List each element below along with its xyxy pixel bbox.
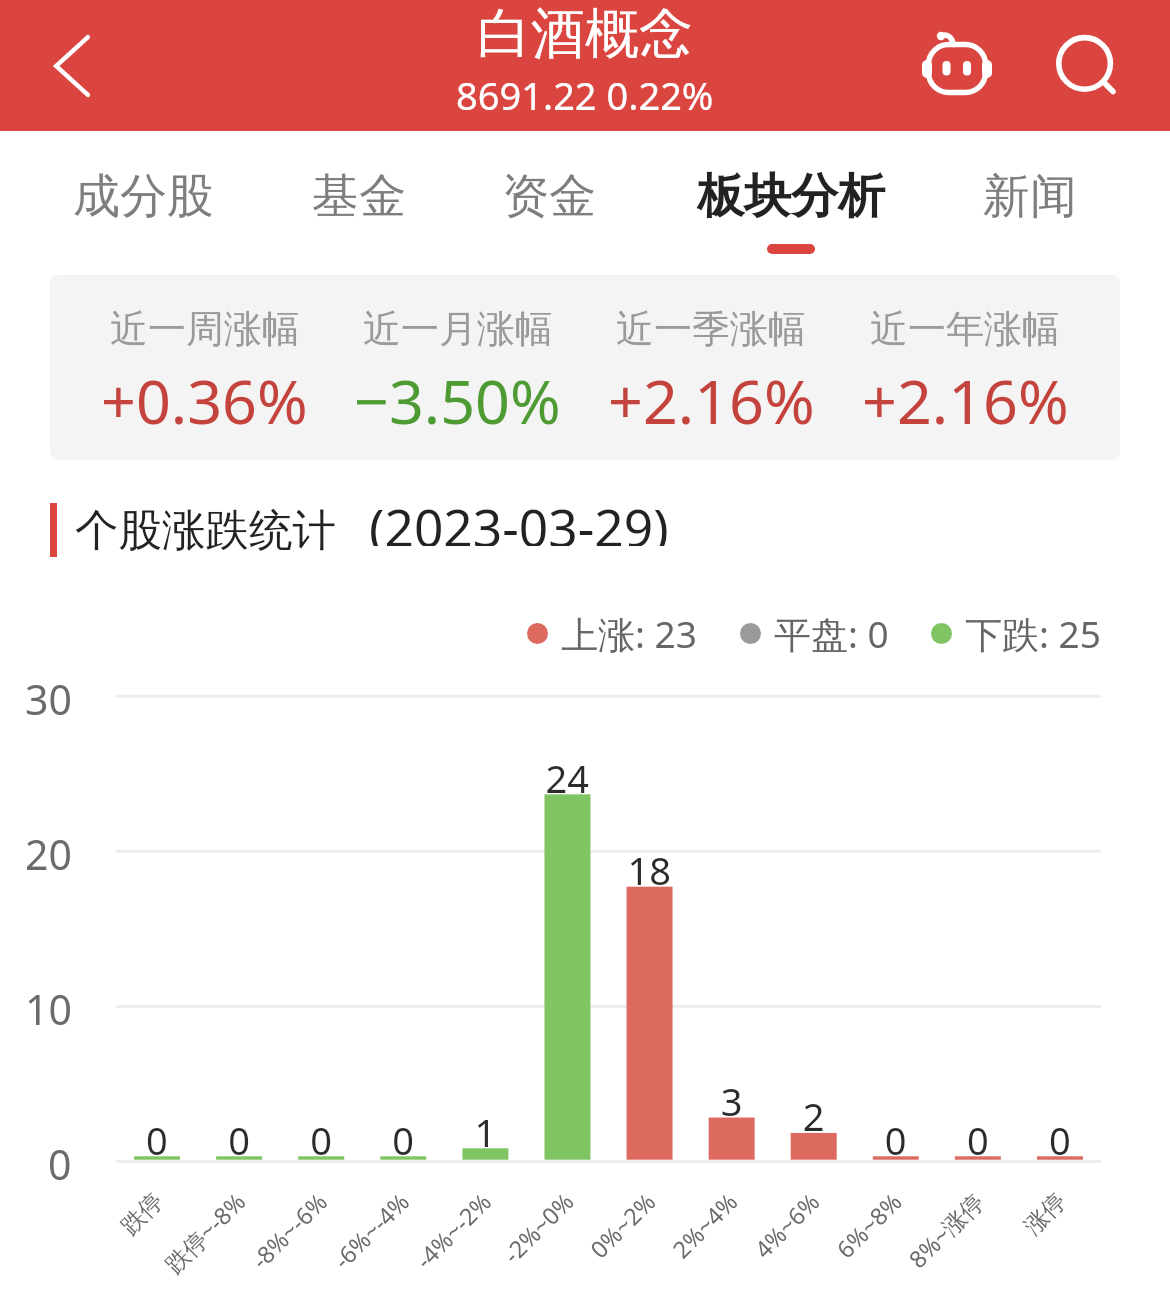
button[interactable]: Back (12, 10, 132, 121)
staticText: +2.16% (608, 359, 815, 442)
button[interactable]: 板块分析 (686, 131, 896, 263)
staticText: −3.50% (354, 359, 561, 442)
staticText: 新闻 (983, 167, 1077, 226)
button[interactable]: 基金 (254, 131, 464, 263)
staticText: 板块分析 (697, 167, 885, 226)
staticText: 资金 (502, 167, 596, 226)
staticText: 上涨: 23 (561, 608, 697, 659)
staticText: 8691.22 0.22% (456, 69, 714, 121)
button[interactable]: 成分股 (38, 131, 248, 263)
staticText: 基金 (312, 167, 406, 226)
button[interactable]: Search (1034, 7, 1140, 118)
staticText: (2023-03-29) (369, 492, 669, 546)
staticText: +0.36% (101, 359, 308, 442)
button[interactable]: 平盘: 0 (740, 608, 889, 659)
staticText: 成分股 (73, 167, 214, 226)
staticText: +2.16% (862, 359, 1069, 442)
staticText: 个股涨跌统计 (75, 503, 336, 557)
staticText: 平盘: 0 (774, 608, 889, 659)
button[interactable]: 下跌: 25 (931, 608, 1101, 659)
staticText: 近一年涨幅 (870, 305, 1060, 353)
button[interactable]: AI assistant (904, 6, 1010, 117)
button[interactable]: 新闻 (925, 131, 1135, 263)
staticText: 近一周涨幅 (110, 305, 300, 353)
button[interactable]: 资金 (444, 131, 654, 263)
staticText: 近一季涨幅 (616, 305, 806, 353)
staticText: 近一月涨幅 (363, 305, 553, 353)
button[interactable]: 上涨: 23 (527, 608, 697, 659)
staticText: 白酒概念 (477, 0, 693, 68)
staticText: 下跌: 25 (965, 608, 1101, 659)
